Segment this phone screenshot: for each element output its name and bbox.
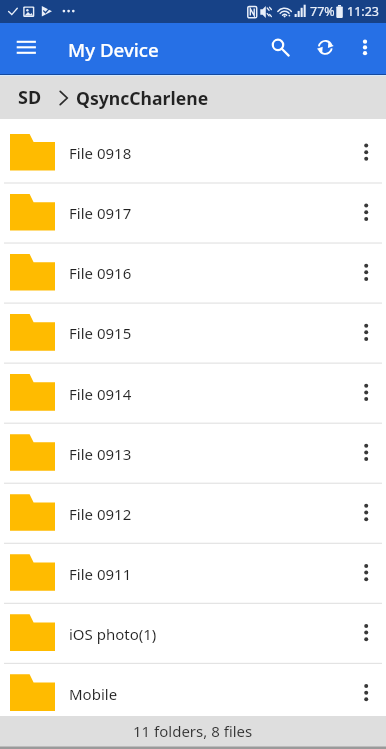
button[interactable]: More options for File 0917: [346, 181, 386, 241]
button[interactable]: More options for Mobile: [346, 662, 386, 716]
staticText: iOS photo(1): [69, 624, 157, 644]
staticText: File 0916: [69, 263, 132, 283]
button[interactable]: iOS photo(1): [0, 602, 386, 662]
button[interactable]: More options for File 0911: [346, 542, 386, 602]
button[interactable]: File 0911: [0, 542, 386, 602]
staticText: File 0914: [69, 384, 132, 404]
button[interactable]: File 0912: [0, 482, 386, 542]
button[interactable]: More options for File 0912: [346, 482, 386, 542]
button[interactable]: More options for File 0918: [346, 121, 386, 181]
button[interactable]: More options: [347, 23, 386, 74]
staticText: File 0915: [69, 323, 132, 343]
button[interactable]: More options for File 0915: [346, 301, 386, 361]
button[interactable]: File 0913: [0, 422, 386, 482]
staticText: Mobile: [69, 684, 118, 704]
button[interactable]: File 0915: [0, 301, 386, 361]
staticText: File 0917: [69, 203, 132, 223]
button[interactable]: SD: [18, 85, 42, 110]
button[interactable]: File 0917: [0, 181, 386, 241]
staticText: File 0911: [69, 564, 132, 584]
button[interactable]: File 0918: [0, 121, 386, 181]
staticText: 77%: [310, 3, 335, 20]
button[interactable]: More options for File 0914: [346, 362, 386, 422]
staticText: 11:23: [347, 3, 379, 20]
staticText: File 0913: [69, 444, 132, 464]
button[interactable]: Mobile: [0, 662, 386, 716]
button[interactable]: QsyncCharlene: [76, 86, 209, 110]
staticText: File 0918: [69, 143, 132, 163]
button[interactable]: Refresh: [303, 23, 347, 74]
staticText: SD: [18, 85, 42, 110]
button[interactable]: Search: [256, 23, 300, 74]
button[interactable]: File 0916: [0, 241, 386, 301]
staticText: My Device: [68, 37, 159, 62]
staticText: File 0912: [69, 504, 132, 524]
button[interactable]: Navigation menu: [8, 23, 45, 74]
staticText: 11 folders, 8 files: [133, 721, 253, 741]
staticText: QsyncCharlene: [76, 86, 209, 110]
button[interactable]: More options for File 0913: [346, 422, 386, 482]
button[interactable]: More options for iOS photo(1): [346, 602, 386, 662]
button[interactable]: More options for File 0916: [346, 241, 386, 301]
button[interactable]: File 0914: [0, 362, 386, 422]
